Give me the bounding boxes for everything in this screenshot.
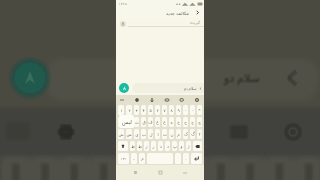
button[interactable]: Back	[193, 8, 202, 17]
button[interactable]: گ	[190, 129, 195, 139]
button[interactable]: ک	[183, 129, 188, 139]
staticText: گ	[191, 132, 195, 137]
button[interactable]: Shift	[118, 141, 128, 151]
button[interactable]: ج	[190, 117, 195, 127]
button[interactable]: ر	[151, 141, 156, 151]
button[interactable]: ۴	[141, 105, 146, 115]
staticText: ذ	[160, 144, 162, 149]
button[interactable]: و	[179, 141, 184, 151]
button[interactable]: Backspace	[193, 141, 202, 151]
button[interactable]: ۱	[118, 105, 124, 115]
button[interactable]: ت	[162, 129, 167, 139]
button[interactable]: GIF	[164, 97, 170, 103]
staticText: ب	[142, 132, 146, 137]
button[interactable]: ح	[183, 117, 188, 127]
staticText: گیرنده	[190, 20, 201, 24]
button[interactable]: ن	[169, 129, 174, 139]
button[interactable]: Stickers	[179, 97, 185, 103]
staticText: سلام دو	[184, 86, 197, 91]
staticText: ژ	[187, 144, 190, 149]
staticText: ض	[118, 120, 124, 125]
staticText: سلام دو	[224, 69, 260, 84]
button[interactable]: ز	[144, 141, 149, 151]
button[interactable]: Voice input	[149, 97, 155, 103]
button[interactable]: ص	[126, 117, 132, 127]
staticText: ۳	[135, 108, 138, 113]
button[interactable]: ۳	[134, 105, 139, 115]
button[interactable]: د	[165, 141, 170, 151]
staticText: سلام دو	[223, 70, 259, 85]
staticText: ظ	[131, 144, 135, 149]
button[interactable]: ،	[131, 153, 137, 164]
button[interactable]: Back	[180, 168, 189, 177]
staticText: .	[185, 156, 187, 162]
button[interactable]: غ	[155, 117, 160, 127]
staticText: ط	[138, 144, 142, 149]
button[interactable]: ۹	[176, 105, 181, 115]
staticText: م	[177, 132, 180, 137]
button[interactable]: م	[139, 153, 145, 164]
staticText: ر	[152, 144, 155, 149]
staticText: ×	[198, 107, 201, 113]
staticText: پ	[173, 144, 177, 149]
staticText: ۷	[163, 108, 166, 113]
button[interactable]: سلام دو	[135, 83, 202, 93]
staticText: -	[192, 107, 194, 113]
button[interactable]: ۸	[169, 105, 174, 115]
button[interactable]: ؟	[197, 129, 202, 139]
staticText: ۵	[149, 108, 152, 113]
button[interactable]: ژ	[186, 141, 191, 151]
button[interactable]: Settings	[134, 97, 140, 103]
button[interactable]: چ	[197, 117, 202, 127]
button[interactable]: ط	[137, 141, 142, 151]
staticText: سلام دو	[225, 71, 261, 86]
button[interactable]: Emoji	[194, 97, 200, 103]
button[interactable]: ق	[141, 117, 146, 127]
button[interactable]: Home	[156, 168, 165, 177]
button[interactable]: Send	[119, 83, 129, 93]
staticText: ل	[149, 132, 153, 137]
button[interactable]: ۷	[162, 105, 167, 115]
button[interactable]: -	[190, 105, 195, 115]
button[interactable]: ا	[155, 129, 160, 139]
button[interactable]: Recent apps	[131, 168, 140, 177]
button[interactable]: ی	[134, 129, 139, 139]
staticText: ۶	[156, 108, 159, 113]
staticText: ق	[142, 120, 146, 125]
button[interactable]: ۰	[183, 105, 188, 115]
staticText: و	[180, 144, 183, 149]
button[interactable]: م	[176, 129, 181, 139]
staticText: ؟۱۲	[121, 157, 126, 160]
button[interactable]: .	[183, 153, 189, 164]
button[interactable]: خ	[176, 117, 181, 127]
button[interactable]: پ	[172, 141, 177, 151]
button[interactable]: ه	[169, 117, 174, 127]
staticText: س	[126, 132, 132, 137]
button[interactable]: ۵	[148, 105, 153, 115]
button[interactable]: ۲	[126, 105, 132, 115]
button[interactable]: ۶	[155, 105, 160, 115]
button[interactable]: ظ	[130, 141, 135, 151]
button[interactable]: ‌	[175, 153, 181, 164]
button[interactable]: ف	[148, 117, 153, 127]
button[interactable]: ؟۱۲	[118, 153, 129, 164]
staticText: ک	[184, 132, 188, 137]
button[interactable]: ل	[148, 129, 153, 139]
button[interactable]: ذ	[158, 141, 163, 151]
button[interactable]: گیرنده	[120, 18, 204, 29]
button[interactable]: ع	[162, 117, 167, 127]
button[interactable]: س	[126, 129, 132, 139]
staticText: غ	[156, 120, 159, 125]
staticText: ۸	[170, 108, 173, 113]
button[interactable]: Collapse keyboard	[119, 97, 125, 103]
button[interactable]: ض	[118, 117, 124, 127]
staticText: م	[141, 156, 144, 161]
staticText: سلام دو	[225, 69, 261, 84]
button[interactable]: ×	[197, 105, 202, 115]
button[interactable]: ث	[134, 117, 139, 127]
button[interactable]: Enter	[191, 153, 202, 164]
staticText: سلام دو	[224, 70, 260, 85]
button[interactable]: ب	[141, 129, 146, 139]
button[interactable]: ش	[118, 129, 124, 139]
